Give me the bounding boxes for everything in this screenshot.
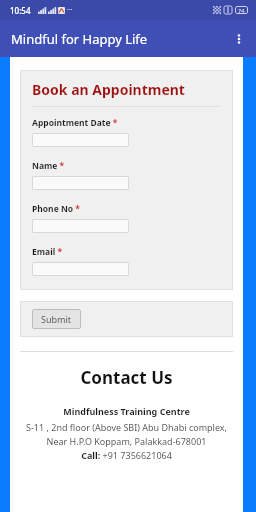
staticText: Mindful for Happy Life [11,30,148,48]
staticText: Contact Us [20,366,233,389]
staticText: Email * [32,246,63,258]
button[interactable]: Submit [32,309,81,329]
button[interactable]: More options [222,22,256,56]
staticText: Near H.P.O Koppam, Palakkad-678001 [20,435,233,447]
staticText: Name * [32,160,65,172]
staticText: Submit [41,313,72,325]
staticText: ··· [67,5,73,15]
staticText: S-11 , 2nd floor (Above SBI) Abu Dhabi c… [20,421,233,433]
staticText: 10:54 [10,5,31,16]
staticText: 74 [238,7,245,14]
button[interactable] [32,133,129,147]
button[interactable]: Call: +91 7356621064 [20,449,233,461]
button[interactable] [32,219,129,233]
button[interactable] [32,262,129,276]
staticText: Mindfulness Training Centre [20,405,233,417]
button[interactable] [32,176,129,190]
staticText: Book an Appointment [32,80,185,99]
staticText: Appointment Date * [32,117,118,129]
staticText: Phone No * [32,203,80,215]
